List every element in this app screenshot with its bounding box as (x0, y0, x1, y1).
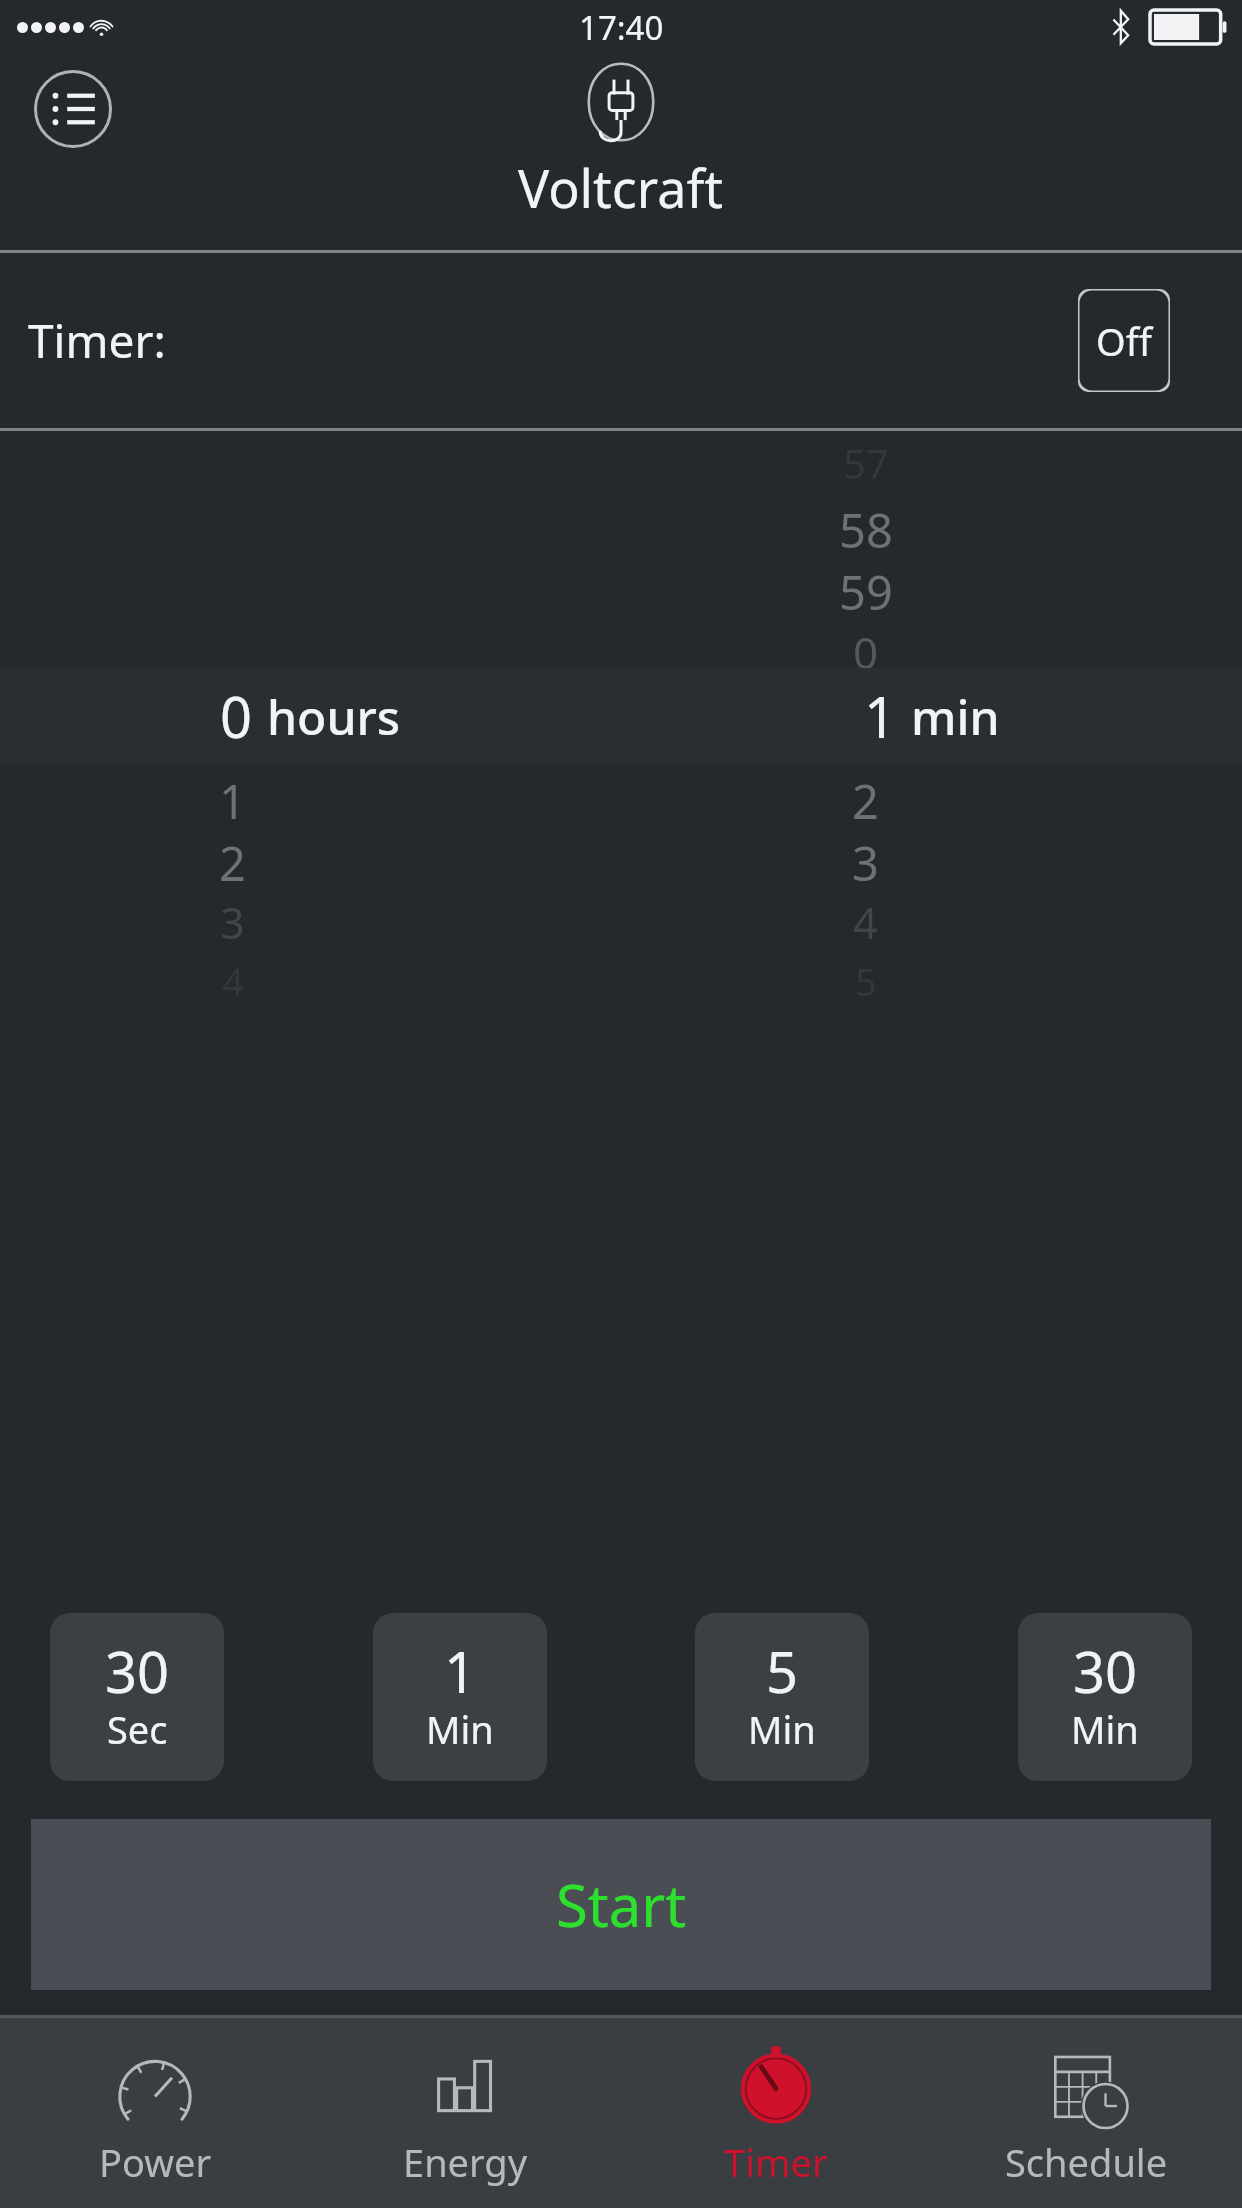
button[interactable]: 5 (695, 1613, 869, 1781)
button[interactable]: Energy (310, 2018, 620, 2208)
staticText: 30 (1073, 1633, 1138, 1709)
button[interactable]: 30 (50, 1613, 224, 1781)
button[interactable]: Off (1078, 289, 1170, 392)
button[interactable]: 30 (1018, 1613, 1192, 1781)
staticText: min (911, 684, 1000, 749)
button[interactable]: Schedule (931, 2018, 1242, 2208)
button[interactable]: Start (31, 1819, 1211, 1990)
staticText: 58 (839, 498, 893, 560)
staticText: Min (426, 1703, 494, 1755)
staticText: 4 (853, 893, 878, 952)
staticText: 17:40 (579, 5, 664, 50)
staticText: 3 (852, 831, 879, 893)
staticText: 59 (839, 560, 893, 622)
staticText: Voltcraft (518, 152, 724, 223)
staticText: 30 (105, 1633, 170, 1709)
staticText: Min (748, 1703, 816, 1755)
staticText: 0 (853, 622, 879, 668)
button[interactable]: 1 (373, 1613, 547, 1781)
staticText: Timer: (28, 309, 166, 372)
staticText: 4 (222, 955, 244, 1007)
staticText: 5 (766, 1633, 799, 1709)
staticText: Timer (724, 2136, 828, 2188)
staticText: 3 (220, 893, 245, 952)
staticText: 2 (219, 831, 246, 893)
button[interactable]: Power (0, 2018, 310, 2208)
staticText: Off (1096, 315, 1152, 367)
staticText: Schedule (1005, 2136, 1168, 2188)
staticText: hours (267, 684, 401, 749)
staticText: 0 (220, 678, 253, 754)
staticText: 57 (843, 436, 889, 490)
staticText: 2 (852, 769, 879, 831)
staticText: Sec (107, 1703, 168, 1755)
staticText: Power (99, 2136, 212, 2188)
staticText: 1 (219, 769, 246, 831)
button[interactable]: Menu (34, 70, 112, 148)
staticText: Start (556, 1865, 687, 1944)
staticText: Min (1071, 1703, 1139, 1755)
button[interactable]: Timer (620, 2018, 931, 2208)
staticText: 5 (855, 955, 877, 1007)
staticText: 1 (864, 678, 897, 754)
staticText: 1 (444, 1633, 477, 1709)
button[interactable]: Timer: (0, 253, 1242, 428)
staticText: Energy (403, 2136, 528, 2188)
